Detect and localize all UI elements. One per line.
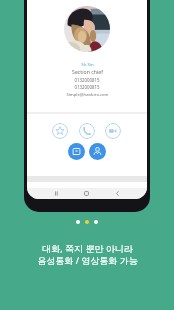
- staticText: 대화, 쪽지 뿐만 아니라: [42, 242, 133, 254]
- staticText: Section chief: [72, 68, 103, 75]
- staticText: Sh Sin: [81, 61, 94, 67]
- button[interactable]: Home: [78, 188, 94, 199]
- button[interactable]: Favorite: [52, 123, 68, 139]
- button[interactable]: Video call: [105, 123, 121, 139]
- button[interactable]: Call: [79, 123, 95, 139]
- staticText: Simple@hanbiro.com: [66, 92, 109, 98]
- staticText: 0132000815: [74, 84, 100, 90]
- button[interactable]: Contact: [89, 143, 106, 160]
- staticText: 0132000815: [74, 77, 100, 83]
- button[interactable]: Recent apps: [48, 188, 64, 199]
- staticText: 음성통화 / 영상통화 가능: [37, 254, 138, 266]
- button[interactable]: Back: [109, 188, 125, 199]
- button[interactable]: Message: [68, 143, 85, 160]
